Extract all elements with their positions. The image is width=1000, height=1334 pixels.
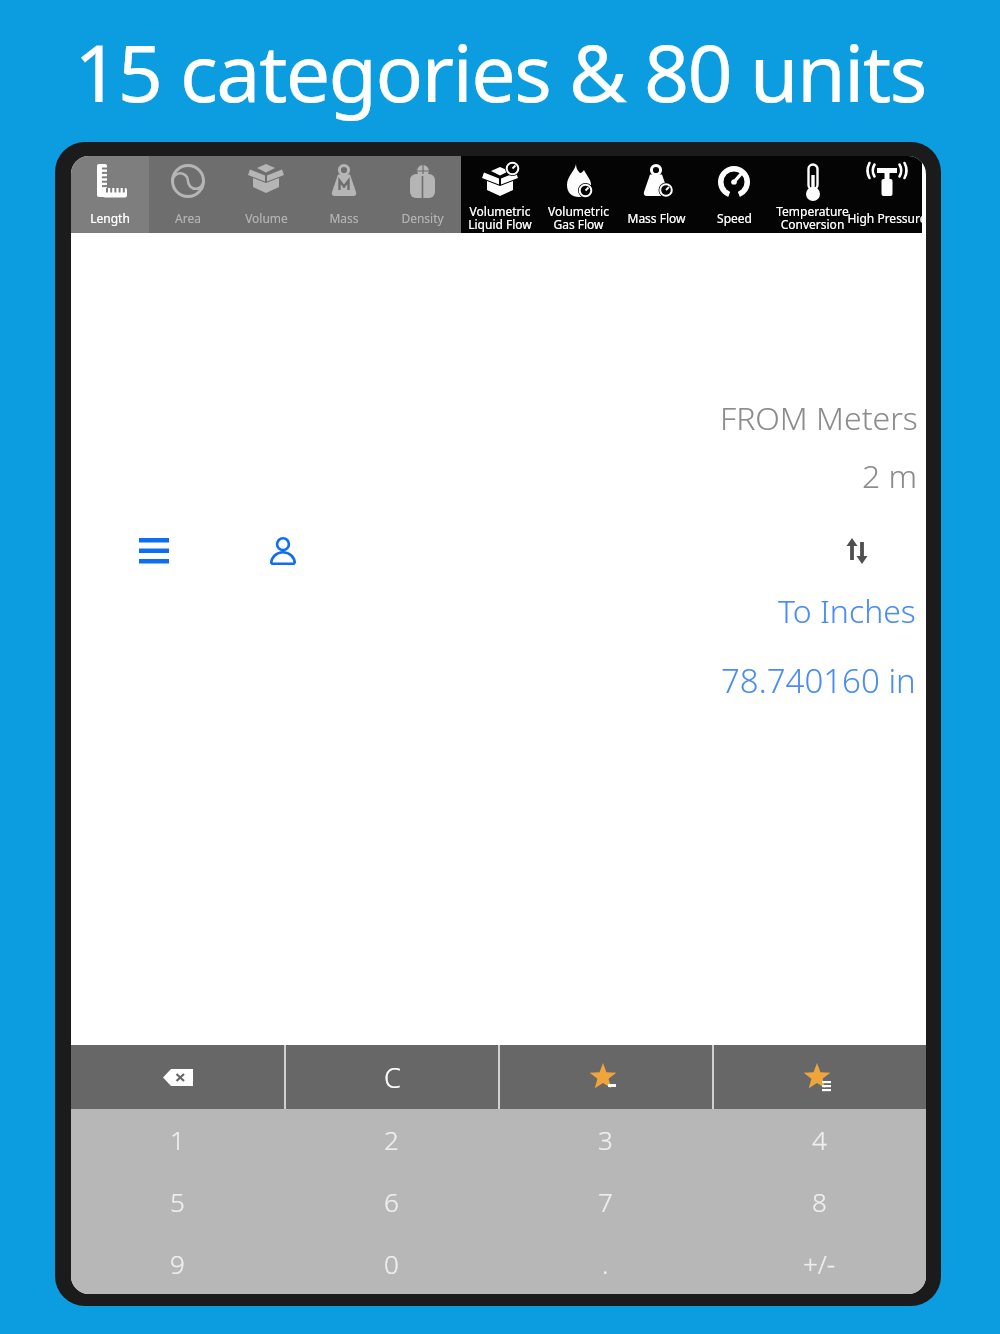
button[interactable]: 2: [284, 1109, 498, 1170]
button[interactable]: C: [286, 1045, 498, 1109]
button[interactable]: Volumetric Liquid Flow: [461, 156, 539, 233]
button[interactable]: [133, 532, 175, 570]
staticText: Volumetric Liquid Flow: [468, 203, 532, 233]
button[interactable]: To Inches: [778, 589, 916, 633]
button[interactable]: 9: [71, 1232, 284, 1294]
staticText: 4: [812, 1122, 827, 1157]
button[interactable]: [500, 1045, 712, 1109]
button[interactable]: [837, 530, 877, 572]
button[interactable]: Area: [149, 156, 227, 233]
button[interactable]: 0: [284, 1232, 498, 1294]
staticText: Speed: [717, 210, 752, 226]
staticText: Area: [175, 210, 201, 226]
staticText: Mass Flow: [627, 210, 686, 226]
staticText: .: [602, 1246, 609, 1281]
button[interactable]: Mass: [305, 156, 383, 233]
staticText: Length: [90, 210, 130, 226]
staticText: +/-: [803, 1246, 836, 1281]
staticText: 2: [384, 1122, 399, 1157]
button[interactable]: 3: [498, 1109, 712, 1170]
staticText: Temperature Conversion: [776, 203, 849, 233]
staticText: 7: [598, 1184, 613, 1219]
button[interactable]: High Pressure: [851, 156, 922, 233]
staticText: FROM Meters: [720, 396, 918, 440]
staticText: 8: [812, 1184, 827, 1219]
button[interactable]: 4: [712, 1109, 926, 1170]
button[interactable]: [71, 1045, 284, 1109]
staticText: High Pressure: [835, 210, 926, 226]
button[interactable]: Volume: [227, 156, 305, 233]
staticText: Density: [401, 210, 444, 226]
button[interactable]: 7: [498, 1170, 712, 1232]
staticText: 5: [170, 1184, 185, 1219]
staticText: Volume: [245, 210, 288, 226]
button[interactable]: Temperature Conversion: [773, 156, 851, 233]
staticText: 2 m: [862, 454, 918, 498]
staticText: 6: [384, 1184, 399, 1219]
staticText: 0: [384, 1246, 399, 1281]
button[interactable]: [714, 1045, 926, 1109]
staticText: C: [384, 1059, 401, 1096]
button[interactable]: Volumetric Gas Flow: [539, 156, 617, 233]
button[interactable]: 8: [712, 1170, 926, 1232]
button[interactable]: [263, 530, 303, 572]
staticText: 78.740160 in: [721, 658, 916, 703]
button[interactable]: Length: [71, 156, 149, 233]
staticText: Volumetric Gas Flow: [548, 203, 609, 233]
staticText: 15 categories & 80 units: [0, 18, 1000, 126]
button[interactable]: Density: [383, 156, 461, 233]
staticText: Mass: [329, 210, 359, 226]
button[interactable]: Mass Flow: [617, 156, 695, 233]
button[interactable]: Speed: [695, 156, 773, 233]
button[interactable]: 6: [284, 1170, 498, 1232]
staticText: 3: [598, 1122, 613, 1157]
staticText: 9: [170, 1246, 185, 1281]
staticText: 1: [170, 1122, 185, 1157]
button[interactable]: +/-: [712, 1232, 926, 1294]
button[interactable]: 5: [71, 1170, 284, 1232]
